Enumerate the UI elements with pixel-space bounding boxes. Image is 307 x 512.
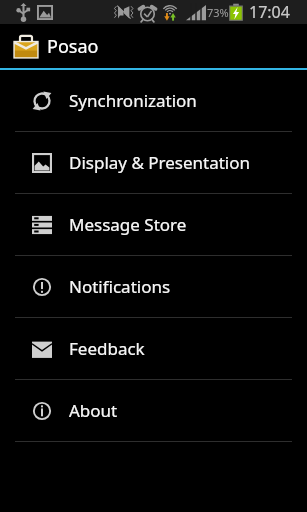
staticText: Display & Presentation — [69, 151, 251, 174]
staticText: 17:04 — [249, 1, 290, 23]
button[interactable]: Display & Presentation — [0, 132, 307, 193]
staticText: Notifications — [69, 275, 171, 298]
staticText: Synchronization — [69, 89, 197, 112]
staticText: Message Store — [69, 213, 187, 236]
button[interactable]: Synchronization — [0, 70, 307, 131]
button[interactable]: Notifications — [0, 256, 307, 317]
button[interactable]: About — [0, 380, 307, 441]
staticText: Feedback — [69, 337, 145, 360]
staticText: About — [69, 399, 118, 422]
button[interactable]: Feedback — [0, 318, 307, 379]
staticText: Posao — [47, 34, 99, 59]
staticText: 73% — [207, 5, 229, 20]
button[interactable]: Message Store — [0, 194, 307, 255]
